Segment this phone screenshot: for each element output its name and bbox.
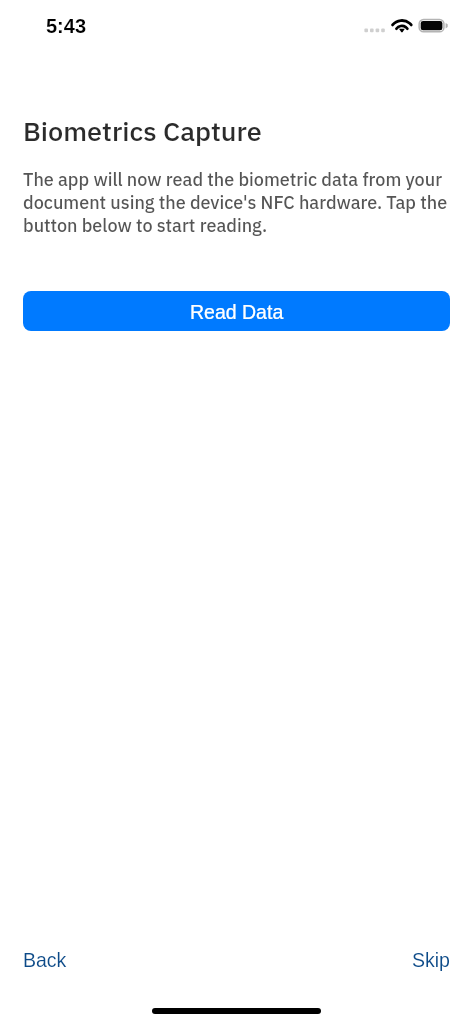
staticText: 5:43 — [46, 15, 87, 37]
button[interactable]: Read Data — [23, 291, 450, 331]
staticText: Read Data — [190, 301, 284, 323]
button[interactable]: Skip — [412, 949, 450, 971]
staticText: Biometrics Capture — [23, 113, 262, 148]
staticText: The app will now read the biometric data… — [23, 168, 450, 237]
other: Signal, wifi and battery status — [360, 16, 452, 36]
button[interactable]: Back — [23, 949, 67, 971]
